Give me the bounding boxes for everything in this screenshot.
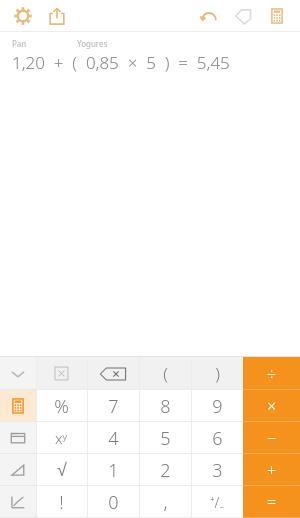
staticText: 3 xyxy=(212,458,223,483)
button[interactable]: 6 xyxy=(191,422,243,454)
button[interactable]: Clear xyxy=(36,357,87,390)
button[interactable]: 0 xyxy=(87,486,139,518)
button[interactable]: 4 xyxy=(87,422,139,454)
button[interactable]: % xyxy=(36,390,87,422)
button[interactable]: , xyxy=(139,486,191,518)
staticText: 8 xyxy=(160,394,171,419)
staticText: ( xyxy=(163,362,168,385)
staticText: 7 xyxy=(108,394,119,419)
staticText: % xyxy=(54,394,69,419)
button[interactable]: 3 xyxy=(191,454,243,486)
staticText: ! xyxy=(59,490,64,515)
staticText: 5 xyxy=(160,426,171,451)
button[interactable]: Undo xyxy=(196,3,222,29)
button[interactable]: Share xyxy=(44,3,70,29)
button[interactable]: Backspace xyxy=(87,357,139,390)
staticText: 9 xyxy=(212,394,223,419)
staticText: = xyxy=(267,491,277,513)
staticText: xʸ xyxy=(55,428,68,448)
button[interactable]: 9 xyxy=(191,390,243,422)
button[interactable]: Tag xyxy=(230,3,256,29)
button[interactable]: ( xyxy=(139,357,191,390)
staticText: × xyxy=(267,395,277,417)
staticText: 1 xyxy=(108,458,119,483)
button[interactable]: Graph xyxy=(0,486,36,518)
button[interactable]: Collapse xyxy=(0,357,36,390)
button[interactable]: ⁺/₋ xyxy=(191,486,243,518)
button[interactable]: Subtract xyxy=(243,422,300,454)
staticText: 1,20 + ( 0,85 × 5 ) = 5,45 xyxy=(12,51,230,74)
staticText: − xyxy=(267,427,277,449)
staticText: √ xyxy=(57,460,67,480)
button[interactable]: Calculator xyxy=(0,390,36,422)
button[interactable]: Equals xyxy=(243,486,300,518)
button[interactable]: Multiply xyxy=(243,390,300,422)
staticText: 2 xyxy=(160,458,171,483)
staticText: , xyxy=(163,490,168,515)
button[interactable]: Settings xyxy=(10,3,36,29)
staticText: 6 xyxy=(212,426,223,451)
button[interactable]: 1 xyxy=(87,454,139,486)
staticText: ) xyxy=(215,362,220,385)
button[interactable]: ! xyxy=(36,486,87,518)
staticText: + xyxy=(267,459,277,481)
button[interactable]: ) xyxy=(191,357,243,390)
button[interactable]: 2 xyxy=(139,454,191,486)
staticText: 4 xyxy=(108,426,119,451)
button[interactable]: Geometry xyxy=(0,454,36,486)
button[interactable]: Calculator xyxy=(264,3,290,29)
button[interactable]: 7 xyxy=(87,390,139,422)
staticText: 0 xyxy=(108,490,119,515)
button[interactable]: Add xyxy=(243,454,300,486)
button[interactable]: Square root xyxy=(36,454,87,486)
staticText: ÷ xyxy=(267,363,277,385)
button[interactable]: Files xyxy=(0,422,36,454)
staticText: Pan xyxy=(12,38,27,49)
button[interactable]: Divide xyxy=(243,357,300,390)
button[interactable]: 5 xyxy=(139,422,191,454)
button[interactable]: 8 xyxy=(139,390,191,422)
staticText: ⁺/₋ xyxy=(210,493,224,512)
button[interactable]: Power xyxy=(36,422,87,454)
staticText: Yogures xyxy=(77,38,108,49)
